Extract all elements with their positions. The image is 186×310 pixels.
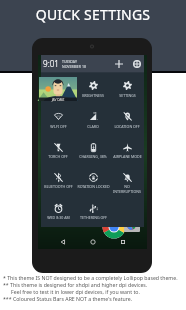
staticText: AIRPLANE MODE <box>113 154 142 159</box>
button[interactable]: LOCATION OFF <box>110 105 144 127</box>
staticText: QUICK SETTINGS <box>0 5 186 24</box>
button[interactable]: TETHERING OFF <box>76 197 110 219</box>
button[interactable]: NO INTERRUPTIONS <box>110 166 144 188</box>
button[interactable]: BRIGHTNESS <box>76 74 110 96</box>
button[interactable]: Photos <box>124 219 140 232</box>
button[interactable]: WI-FI OFF <box>41 105 75 127</box>
button[interactable]: ROTATION LOCKED <box>76 166 110 188</box>
staticText: Feel free to test it in lower dpi device… <box>3 288 140 295</box>
staticText: ** This theme is designed for xhdpi and … <box>3 281 148 288</box>
button[interactable]: Home <box>78 235 108 249</box>
staticText: WI-FI OFF <box>50 124 67 129</box>
button[interactable]: AIRPLANE MODE <box>110 136 144 158</box>
button[interactable]: CHARGING, 38% <box>76 136 110 158</box>
button[interactable]: Recent apps <box>108 235 138 249</box>
button[interactable]: TORCH OFF <box>41 136 75 158</box>
staticText: JAV DAVI <box>39 98 77 102</box>
button[interactable]: User profile <box>39 77 77 101</box>
button[interactable]: Settings <box>131 58 142 69</box>
staticText: WED 8:30 AM <box>47 215 70 220</box>
staticText: * This theme IS NOT designed to be a com… <box>3 274 178 281</box>
button[interactable]: CLARO <box>76 105 110 127</box>
staticText: SETTINGS <box>119 93 136 98</box>
staticText: CHARGING, 38% <box>79 154 107 159</box>
button[interactable]: Back <box>48 235 78 249</box>
staticText: NOVEMBER 18 <box>62 64 86 69</box>
button[interactable]: SETTINGS <box>110 74 144 96</box>
staticText: BLUETOOTH OFF <box>44 184 73 189</box>
staticText: 9:01 <box>43 58 60 69</box>
staticText: *** Coloured Status Bars ARE NOT a theme… <box>3 295 133 302</box>
staticText: TORCH OFF <box>48 154 68 159</box>
staticText: ROTATION LOCKED <box>77 184 110 189</box>
staticText: LOCATION OFF <box>114 124 140 129</box>
staticText: NO INTERRUPTIONS <box>110 184 144 194</box>
button[interactable]: WED 8:30 AM <box>41 197 75 219</box>
staticText: TETHERING OFF <box>80 215 107 220</box>
button[interactable]: Add user <box>113 58 124 69</box>
button[interactable]: BLUETOOTH OFF <box>41 166 75 188</box>
staticText: BRIGHTNESS <box>82 93 104 98</box>
staticText: CLARO <box>87 124 99 129</box>
staticText: TUESDAY <box>62 59 77 64</box>
